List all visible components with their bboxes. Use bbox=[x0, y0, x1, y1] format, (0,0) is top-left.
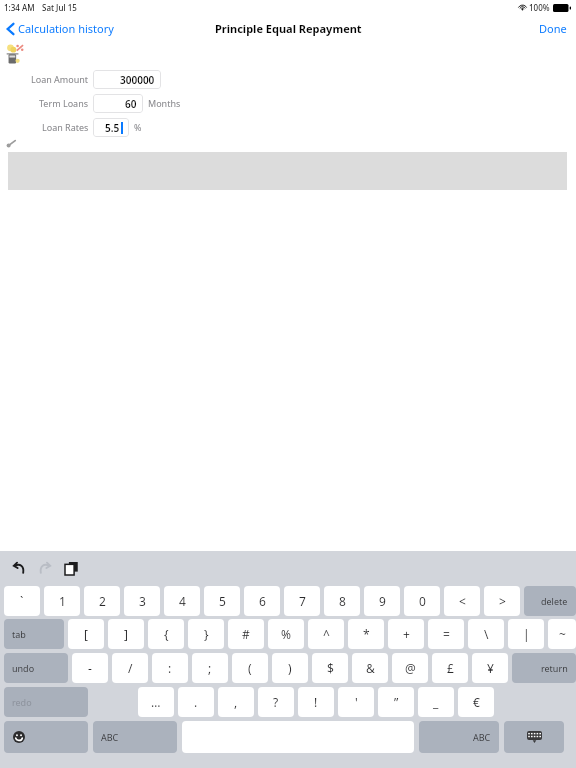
button[interactable]: [ bbox=[68, 619, 104, 649]
button[interactable]: 0 bbox=[404, 586, 440, 616]
staticText: { bbox=[164, 626, 169, 642]
button[interactable]: Redo bbox=[34, 557, 56, 579]
button[interactable]: 5 bbox=[204, 586, 240, 616]
staticText: 60 bbox=[125, 97, 137, 111]
button[interactable]: 1 bbox=[44, 586, 80, 616]
button[interactable]: $ bbox=[312, 653, 348, 683]
button[interactable]: 3 bbox=[124, 586, 160, 616]
button[interactable]: < bbox=[444, 586, 480, 616]
button[interactable]: { bbox=[148, 619, 184, 649]
staticText: } bbox=[204, 626, 209, 642]
staticText: ABC bbox=[101, 731, 119, 743]
button[interactable]: 6 bbox=[244, 586, 280, 616]
staticText: 5.5 bbox=[105, 121, 120, 135]
button[interactable]: / bbox=[112, 653, 148, 683]
button[interactable]: £ bbox=[432, 653, 468, 683]
button[interactable]: ABC bbox=[93, 721, 177, 753]
staticText: ` bbox=[20, 593, 24, 609]
staticText: 9 bbox=[379, 593, 386, 609]
button[interactable]: | bbox=[508, 619, 544, 649]
button[interactable]: . bbox=[178, 687, 214, 717]
button[interactable]: ¥ bbox=[472, 653, 508, 683]
button[interactable]: ! bbox=[298, 687, 334, 717]
button[interactable]: ( bbox=[232, 653, 268, 683]
button[interactable]: @ bbox=[392, 653, 428, 683]
button[interactable]: Undo bbox=[8, 557, 30, 579]
button[interactable]: 4 bbox=[164, 586, 200, 616]
button[interactable]: tab bbox=[4, 619, 64, 649]
button[interactable]: Emoji bbox=[4, 721, 88, 753]
button[interactable]: + bbox=[388, 619, 424, 649]
button[interactable]: ABC bbox=[419, 721, 499, 753]
staticText: Done bbox=[539, 21, 567, 36]
staticText: % bbox=[134, 121, 142, 133]
staticText: ” bbox=[394, 694, 399, 710]
staticText: € bbox=[473, 694, 480, 710]
button[interactable]: 2 bbox=[84, 586, 120, 616]
button[interactable]: * bbox=[348, 619, 384, 649]
staticText: 1:34 AM bbox=[4, 2, 35, 13]
button[interactable]: : bbox=[152, 653, 188, 683]
button[interactable]: ) bbox=[272, 653, 308, 683]
staticText: 3 bbox=[139, 593, 146, 609]
button[interactable]: Paste bbox=[60, 557, 82, 579]
button[interactable]: undo bbox=[4, 653, 68, 683]
staticText: 8 bbox=[339, 593, 346, 609]
button[interactable]: % bbox=[268, 619, 304, 649]
staticText: Sat Jul 15 bbox=[42, 2, 77, 13]
staticText: ABC bbox=[473, 731, 491, 743]
staticText: ; bbox=[208, 660, 212, 676]
button[interactable]: 7 bbox=[284, 586, 320, 616]
button[interactable]: Hide keyboard bbox=[504, 721, 564, 753]
staticText: 0 bbox=[419, 593, 426, 609]
button[interactable]: ] bbox=[108, 619, 144, 649]
staticText: tab bbox=[12, 628, 26, 640]
staticText: ' bbox=[355, 694, 358, 710]
button[interactable]: 8 bbox=[324, 586, 360, 616]
button[interactable]: 5.5 bbox=[93, 118, 129, 137]
staticText: £ bbox=[447, 660, 454, 676]
button[interactable]: ' bbox=[338, 687, 374, 717]
button[interactable]: & bbox=[352, 653, 388, 683]
staticText: . bbox=[194, 694, 198, 710]
button[interactable]: ? bbox=[258, 687, 294, 717]
button[interactable]: delete bbox=[524, 586, 576, 616]
button[interactable]: > bbox=[484, 586, 520, 616]
button[interactable]: } bbox=[188, 619, 224, 649]
staticText: # bbox=[242, 626, 250, 642]
button[interactable]: € bbox=[458, 687, 494, 717]
button[interactable]: return bbox=[512, 653, 576, 683]
staticText: Loan Rates bbox=[42, 121, 89, 133]
button[interactable]: … bbox=[138, 687, 174, 717]
staticText: ! bbox=[314, 694, 318, 710]
button[interactable]: Done bbox=[530, 16, 576, 41]
button[interactable]: , bbox=[218, 687, 254, 717]
button[interactable]: \ bbox=[468, 619, 504, 649]
button[interactable]: - bbox=[72, 653, 108, 683]
button[interactable]: ” bbox=[378, 687, 414, 717]
staticText: _ bbox=[433, 694, 439, 710]
staticText: % bbox=[281, 626, 291, 642]
staticText: 1 bbox=[59, 593, 66, 609]
button[interactable]: ^ bbox=[308, 619, 344, 649]
staticText: : bbox=[168, 660, 172, 676]
button[interactable]: = bbox=[428, 619, 464, 649]
button[interactable]: # bbox=[228, 619, 264, 649]
button[interactable]: _ bbox=[418, 687, 454, 717]
staticText: ) bbox=[288, 660, 292, 676]
staticText: delete bbox=[541, 595, 568, 607]
staticText: redo bbox=[12, 696, 32, 708]
button[interactable]: ` bbox=[4, 586, 40, 616]
staticText: = bbox=[443, 626, 450, 642]
button[interactable]: 300000 bbox=[93, 70, 161, 89]
button[interactable]: Calculation history bbox=[0, 17, 120, 40]
button[interactable]: ~ bbox=[548, 619, 576, 649]
button[interactable]: 9 bbox=[364, 586, 400, 616]
staticText: 100% bbox=[529, 2, 550, 13]
button[interactable]: redo bbox=[4, 687, 88, 717]
button[interactable]: ; bbox=[192, 653, 228, 683]
button[interactable]: 60 bbox=[93, 94, 143, 113]
staticText: 300000 bbox=[120, 73, 155, 87]
staticText: ? bbox=[273, 694, 279, 710]
